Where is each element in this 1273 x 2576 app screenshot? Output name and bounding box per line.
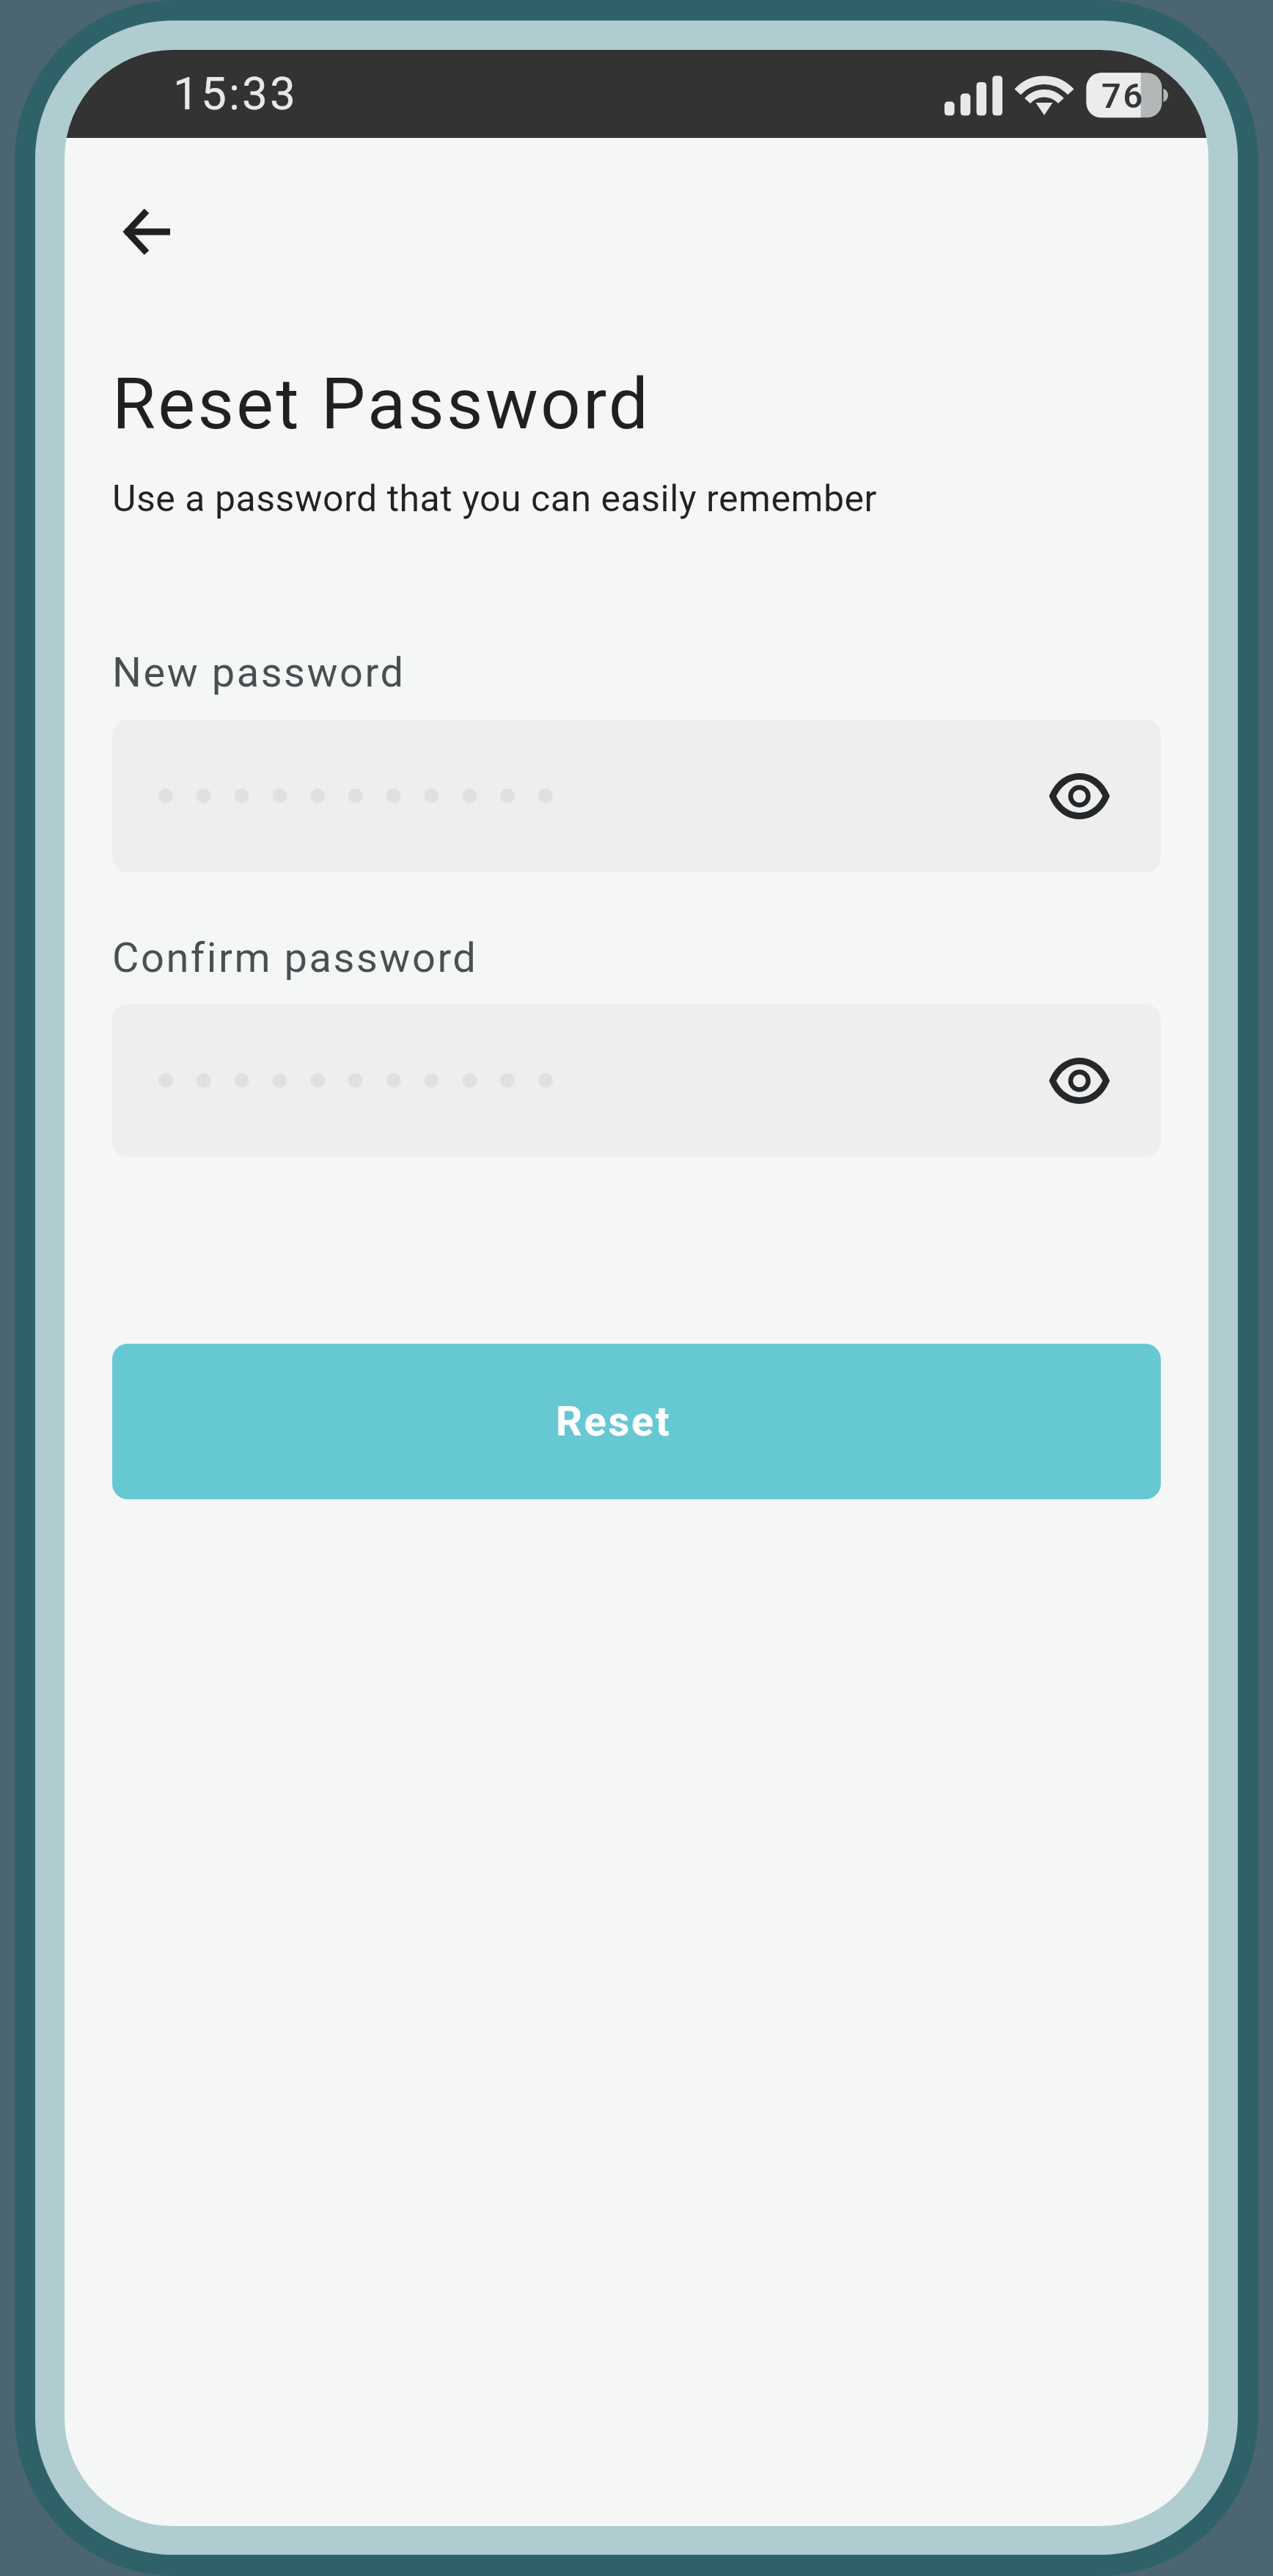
button[interactable]: Show password bbox=[112, 720, 1161, 872]
staticText: New password bbox=[112, 648, 406, 697]
staticText: Use a password that you can easily remem… bbox=[112, 477, 878, 521]
button[interactable]: Show password bbox=[1035, 752, 1123, 841]
staticText: Confirm password bbox=[112, 934, 478, 982]
button[interactable]: Back bbox=[111, 197, 182, 267]
staticText: 76 bbox=[1101, 76, 1145, 116]
staticText: 15:33 bbox=[173, 67, 298, 120]
button[interactable]: Show password bbox=[1035, 1036, 1123, 1125]
button[interactable]: Reset bbox=[112, 1344, 1161, 1499]
button[interactable]: Show password bbox=[112, 1004, 1161, 1157]
staticText: Reset bbox=[556, 1397, 672, 1446]
staticText: Reset Password bbox=[112, 363, 651, 446]
